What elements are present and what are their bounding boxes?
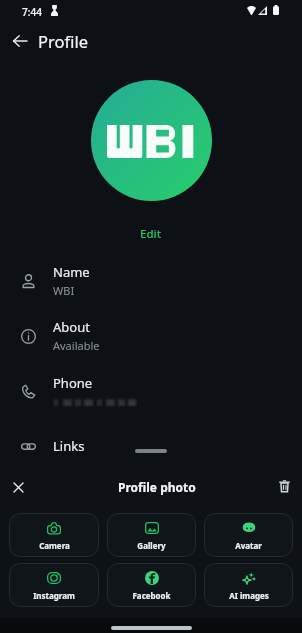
button[interactable]: Phone — [0, 363, 302, 418]
button[interactable]: Avatar — [204, 513, 293, 557]
button[interactable]: Close — [8, 477, 28, 497]
button[interactable]: AI images — [204, 563, 293, 607]
button[interactable]: Name — [0, 253, 302, 308]
button[interactable]: Back — [6, 27, 34, 55]
staticText: Facebook — [132, 590, 171, 601]
staticText: Available — [53, 338, 100, 353]
button[interactable]: Links — [0, 418, 302, 473]
button[interactable]: Gallery — [107, 513, 196, 557]
staticText: WBI — [53, 283, 75, 298]
staticText: About — [53, 318, 90, 336]
staticText: Camera — [39, 540, 70, 551]
staticText: AI images — [229, 590, 269, 601]
staticText: Profile photo — [118, 479, 196, 495]
button[interactable]: About — [0, 308, 302, 363]
staticText: Name — [53, 263, 90, 281]
staticText: Profile — [38, 30, 88, 52]
button[interactable]: Delete — [274, 476, 294, 496]
staticText: Links — [53, 437, 85, 455]
staticText: Edit — [140, 226, 162, 242]
staticText: Gallery — [137, 540, 166, 551]
button[interactable]: Camera — [9, 513, 99, 557]
button[interactable]: Facebook — [107, 563, 196, 607]
staticText: 7:44 — [22, 5, 42, 19]
button[interactable]: Edit — [130, 224, 172, 244]
staticText: Phone — [53, 374, 93, 392]
staticText: Instagram — [33, 590, 75, 601]
staticText: Avatar — [235, 540, 262, 551]
button[interactable]: Instagram — [9, 563, 99, 607]
button[interactable]: Profile photo — [91, 80, 212, 201]
